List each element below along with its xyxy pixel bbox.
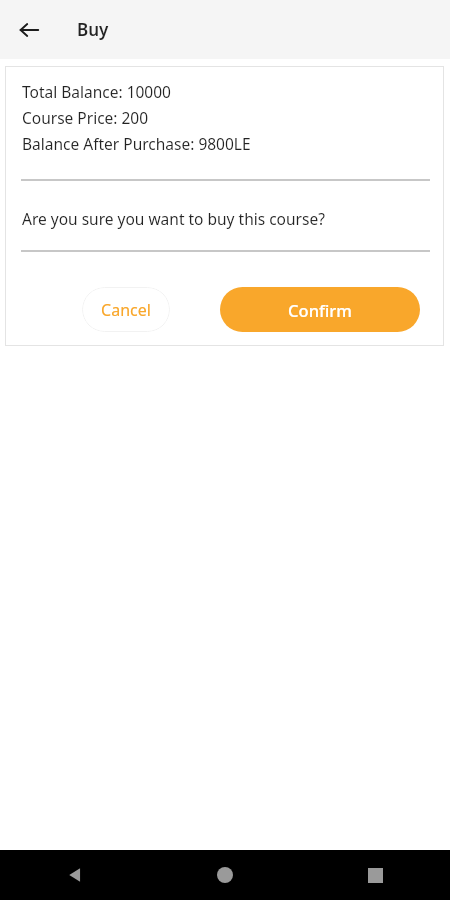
staticText: Total Balance: 10000 [22, 81, 171, 102]
staticText: Are you sure you want to buy this course… [22, 208, 325, 229]
staticText: Buy [77, 18, 109, 41]
staticText: Cancel [101, 299, 151, 321]
staticText: Confirm [288, 299, 352, 321]
staticText: Course Price: 200 [22, 107, 149, 128]
button[interactable]: Home [150, 850, 300, 900]
button[interactable]: Confirm [220, 287, 420, 332]
staticText: Balance After Purchase: 9800LE [22, 133, 251, 154]
button[interactable]: Recent apps [300, 850, 450, 900]
button[interactable]: Back [10, 11, 48, 49]
button[interactable]: Back [0, 850, 150, 900]
button[interactable]: Cancel [82, 287, 170, 332]
